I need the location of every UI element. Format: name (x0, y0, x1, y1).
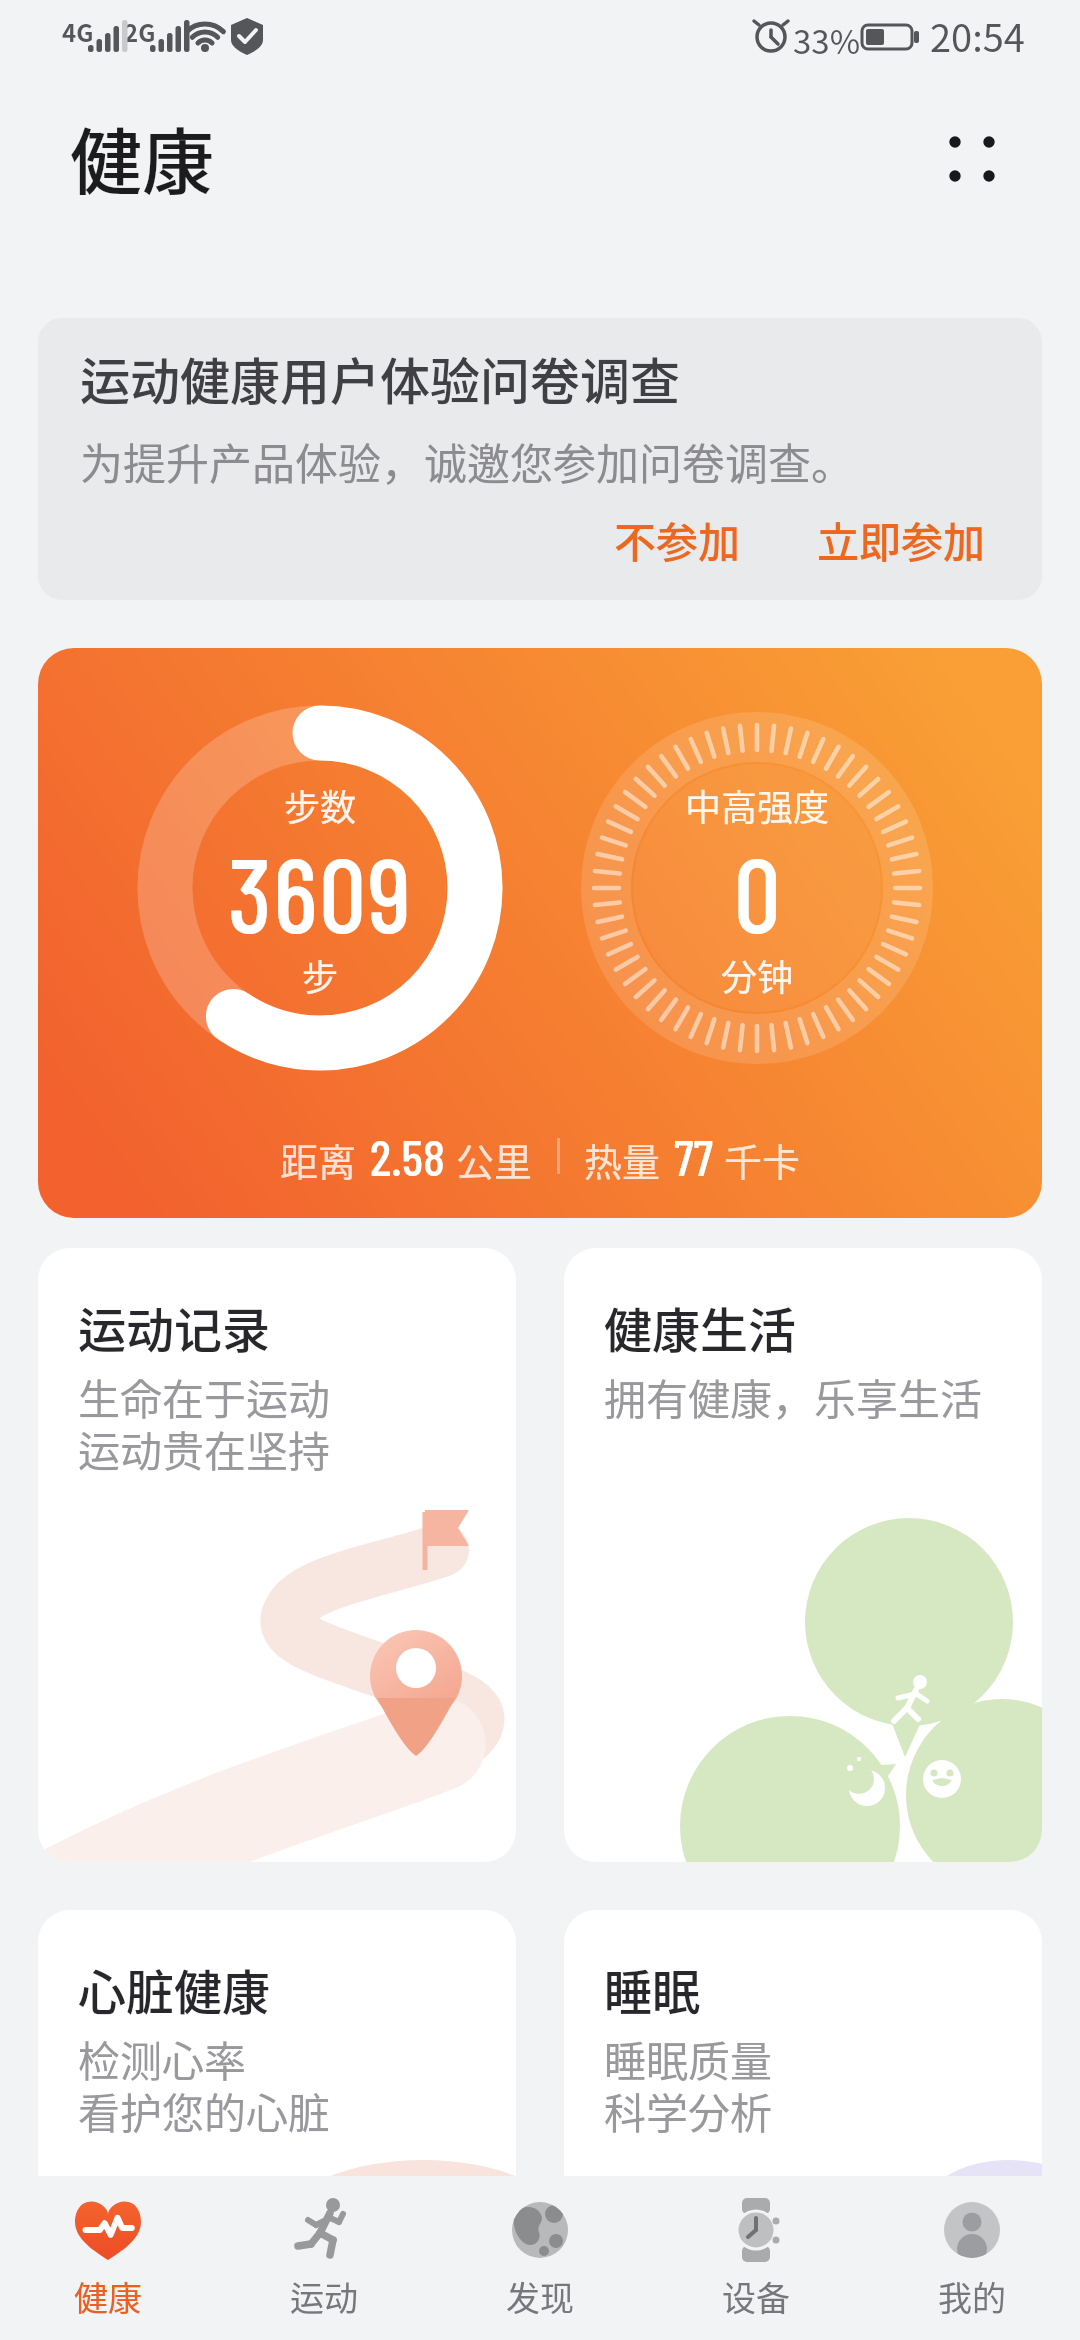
staticText: 20:54 (930, 8, 1025, 63)
staticText: 心脏健康 (78, 1954, 271, 2024)
staticText: 运动记录 (78, 1292, 271, 1362)
staticText: 拥有健康，乐享生活 (604, 1366, 983, 1427)
button[interactable]: 步数 (38, 648, 1042, 1218)
button[interactable]: 发现 (432, 2176, 648, 2340)
staticText: 公里 (456, 1132, 533, 1187)
staticText: 睡眠质量 (604, 2028, 773, 2089)
staticText: 运动健康用户体验问卷调查 (80, 342, 680, 414)
staticText: 睡眠 (604, 1954, 701, 2024)
button[interactable]: 不参加 (604, 499, 751, 580)
staticText: 0 (734, 829, 781, 954)
staticText: 热量 (584, 1132, 661, 1187)
staticText: 中高强度 (685, 779, 830, 831)
button[interactable]: 我的 (864, 2176, 1080, 2340)
button[interactable]: 设备 (648, 2176, 864, 2340)
staticText: 不参加 (614, 509, 741, 570)
button[interactable] (930, 118, 1014, 202)
staticText: 健康 (74, 2272, 142, 2321)
staticText: 分钟 (721, 949, 794, 1001)
staticText: 步 (302, 949, 339, 1001)
staticText: 生命在于运动 (78, 1366, 331, 1427)
staticText: 发现 (506, 2272, 574, 2321)
staticText: 运动贵在坚持 (78, 1418, 331, 1479)
staticText: 3609 (228, 829, 413, 954)
staticText: 2.58 (370, 1125, 445, 1185)
staticText: 为提升产品体验，诚邀您参加问卷调查。 (80, 430, 854, 492)
staticText: 距离 (280, 1132, 357, 1187)
staticText: 检测心率 (78, 2028, 247, 2089)
button[interactable]: 立即参加 (807, 499, 996, 580)
button[interactable]: 睡眠 (564, 1910, 1042, 2330)
staticText: 千卡 (724, 1132, 801, 1187)
staticText: 科学分析 (604, 2080, 773, 2141)
button[interactable]: 健康生活 (564, 1248, 1042, 1862)
button[interactable]: 运动记录 (38, 1248, 516, 1862)
staticText: 健康 (70, 104, 215, 208)
staticText: 33% (793, 16, 861, 64)
staticText: 4G (62, 14, 94, 49)
staticText: 步数 (284, 779, 357, 831)
staticText: 运动 (290, 2272, 358, 2321)
staticText: 健康生活 (604, 1292, 797, 1362)
button[interactable]: 心脏健康 (38, 1910, 516, 2330)
staticText: 立即参加 (817, 509, 986, 570)
button[interactable]: 运动 (216, 2176, 432, 2340)
staticText: 看护您的心脏 (78, 2080, 331, 2141)
staticText: 2G (124, 14, 156, 49)
staticText: 设备 (722, 2272, 790, 2321)
button[interactable]: 健康 (0, 2176, 216, 2340)
staticText: 77 (674, 1125, 713, 1185)
staticText: 我的 (938, 2272, 1006, 2321)
